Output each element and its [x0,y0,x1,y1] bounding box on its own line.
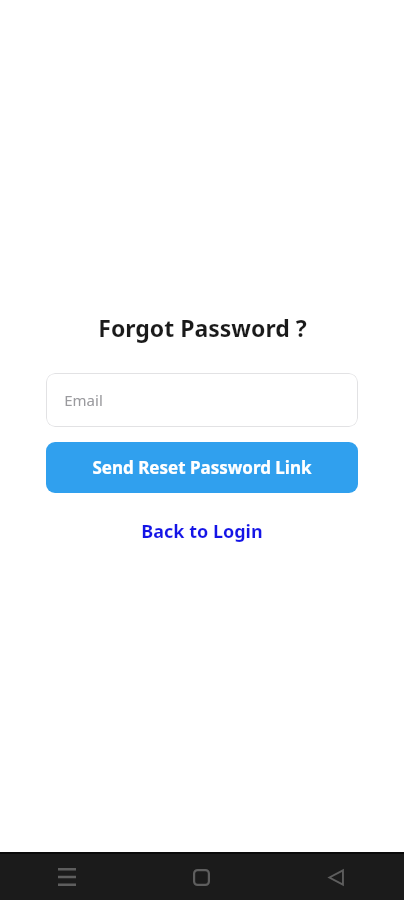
button[interactable]: Email [46,373,358,427]
button[interactable]: Back [269,854,404,900]
button[interactable]: Home [134,854,269,900]
button[interactable]: Send Reset Password Link [46,442,358,493]
button[interactable]: Back to Login [131,513,273,550]
staticText: Back to Login [141,519,263,544]
button[interactable]: Recent apps [0,854,134,900]
staticText: Forgot Password ? [98,312,307,343]
staticText: Send Reset Password Link [92,456,312,479]
staticText: Email [64,390,103,410]
